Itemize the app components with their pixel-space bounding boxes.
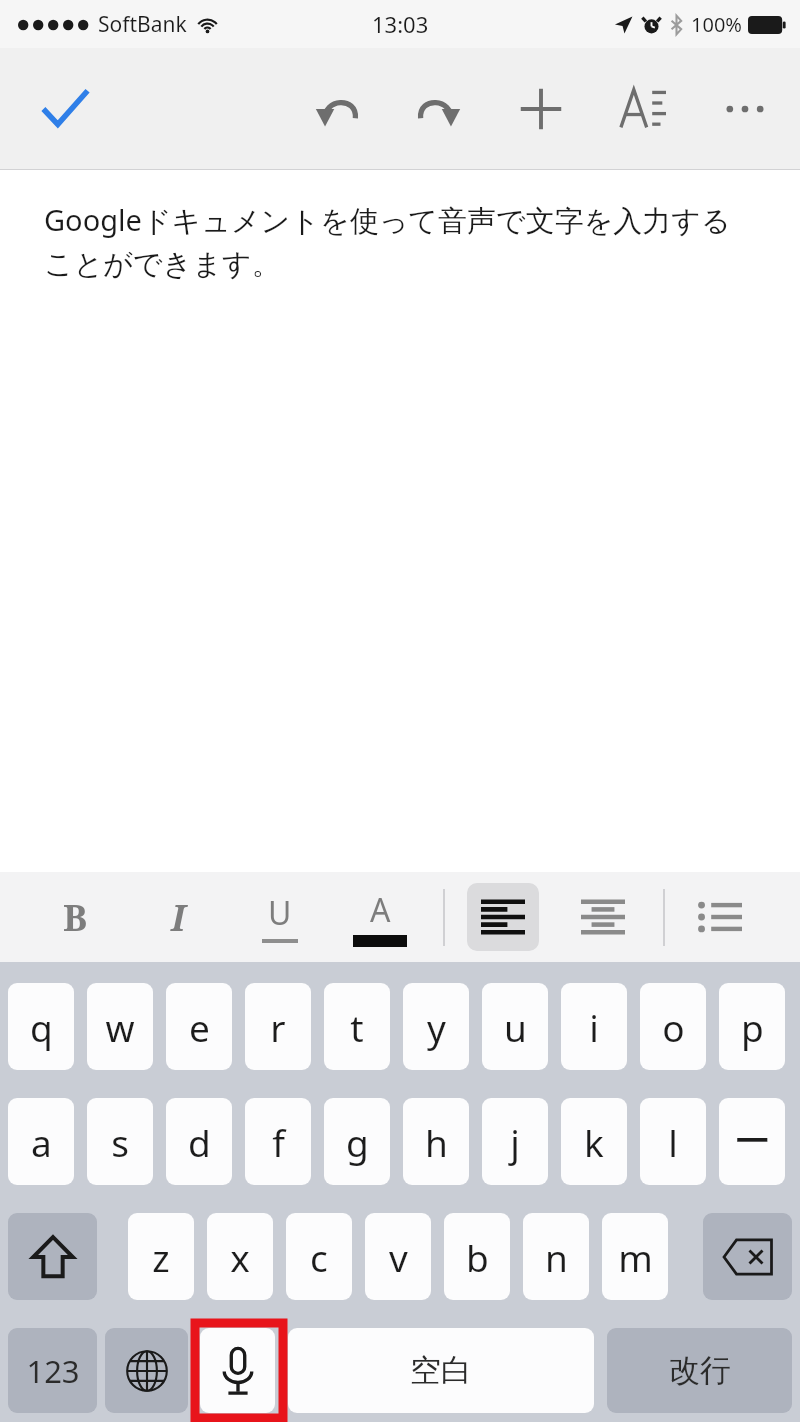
- button[interactable]: b: [444, 1213, 510, 1300]
- button[interactable]: More options: [694, 63, 796, 155]
- button[interactable]: y: [403, 983, 469, 1070]
- staticText: k: [584, 1117, 604, 1167]
- button[interactable]: Done: [22, 66, 108, 152]
- button[interactable]: t: [324, 983, 390, 1070]
- staticText: 空白: [410, 1351, 472, 1390]
- staticText: ー: [734, 1118, 771, 1165]
- button[interactable]: i: [561, 983, 627, 1070]
- button[interactable]: Bulleted list: [684, 883, 756, 951]
- button[interactable]: n: [523, 1213, 589, 1300]
- button[interactable]: s: [87, 1098, 153, 1185]
- button[interactable]: z: [128, 1213, 194, 1300]
- staticText: SoftBank: [98, 10, 187, 39]
- staticText: s: [111, 1117, 129, 1167]
- button[interactable]: c: [286, 1213, 352, 1300]
- button[interactable]: v: [365, 1213, 431, 1300]
- staticText: j: [510, 1117, 520, 1167]
- button[interactable]: Insert: [490, 63, 592, 155]
- staticText: 改行: [669, 1351, 731, 1390]
- button[interactable]: Bold: [38, 879, 112, 955]
- button[interactable]: Align centre: [567, 883, 639, 951]
- button[interactable]: j: [482, 1098, 548, 1185]
- staticText: u: [504, 1002, 527, 1052]
- staticText: c: [310, 1232, 328, 1282]
- staticText: a: [31, 1117, 52, 1167]
- button[interactable]: q: [8, 983, 74, 1070]
- staticText: 13:03: [372, 9, 429, 39]
- staticText: U: [268, 891, 292, 935]
- staticText: A: [370, 888, 391, 932]
- staticText: g: [346, 1117, 369, 1167]
- staticText: m: [618, 1232, 653, 1282]
- staticText: q: [30, 1002, 53, 1052]
- staticText: z: [152, 1232, 170, 1282]
- button[interactable]: x: [207, 1213, 273, 1300]
- staticText: l: [668, 1117, 678, 1167]
- button[interactable]: g: [324, 1098, 390, 1185]
- button[interactable]: Text formatting: [592, 63, 694, 155]
- staticText: o: [662, 1002, 685, 1052]
- staticText: v: [389, 1232, 408, 1282]
- staticText: i: [589, 1002, 599, 1052]
- button[interactable]: Numbers: [8, 1328, 97, 1413]
- staticText: t: [350, 1002, 364, 1052]
- button[interactable]: Undo: [286, 63, 388, 155]
- button[interactable]: Redo: [388, 63, 490, 155]
- staticText: Googleドキュメントを使って音声で文字を入力することができます。: [44, 200, 754, 283]
- button[interactable]: l: [640, 1098, 706, 1185]
- button[interactable]: h: [403, 1098, 469, 1185]
- button[interactable]: Dictation: [200, 1328, 275, 1413]
- staticText: x: [230, 1232, 250, 1282]
- button[interactable]: m: [602, 1213, 668, 1300]
- staticText: B: [63, 893, 88, 942]
- button[interactable]: Align left: [467, 883, 539, 951]
- staticText: b: [466, 1232, 489, 1282]
- staticText: y: [427, 1002, 446, 1052]
- button[interactable]: Change keyboard: [105, 1328, 188, 1413]
- staticText: I: [171, 893, 186, 942]
- button[interactable]: k: [561, 1098, 627, 1185]
- button[interactable]: u: [482, 983, 548, 1070]
- staticText: r: [270, 1002, 286, 1052]
- button[interactable]: 空白: [288, 1328, 594, 1413]
- button[interactable]: w: [87, 983, 153, 1070]
- staticText: w: [105, 1002, 135, 1052]
- staticText: d: [188, 1117, 211, 1167]
- staticText: n: [545, 1232, 568, 1282]
- staticText: 100%: [691, 11, 742, 38]
- button[interactable]: e: [166, 983, 232, 1070]
- button[interactable]: Googleドキュメントを使って音声で文字を入力することができます。: [0, 170, 800, 872]
- button[interactable]: Underline: [243, 879, 317, 955]
- button[interactable]: Backspace: [703, 1213, 792, 1300]
- button[interactable]: ー: [719, 1098, 785, 1185]
- staticText: p: [741, 1002, 764, 1052]
- button[interactable]: d: [166, 1098, 232, 1185]
- staticText: e: [189, 1002, 210, 1052]
- button[interactable]: a: [8, 1098, 74, 1185]
- button[interactable]: f: [245, 1098, 311, 1185]
- button[interactable]: Italic: [141, 879, 215, 955]
- button[interactable]: 改行: [607, 1328, 792, 1413]
- button[interactable]: Text colour: [343, 879, 417, 955]
- staticText: 123: [26, 1350, 80, 1392]
- button[interactable]: o: [640, 983, 706, 1070]
- staticText: h: [425, 1117, 448, 1167]
- button[interactable]: p: [719, 983, 785, 1070]
- button[interactable]: r: [245, 983, 311, 1070]
- button[interactable]: Shift: [8, 1213, 97, 1300]
- staticText: f: [272, 1117, 285, 1167]
